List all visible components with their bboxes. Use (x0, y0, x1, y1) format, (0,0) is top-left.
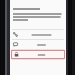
button[interactable]: Call emergency services (10, 30, 66, 39)
button[interactable]: Send message (10, 40, 66, 49)
button[interactable]: Lock device (11, 50, 65, 59)
